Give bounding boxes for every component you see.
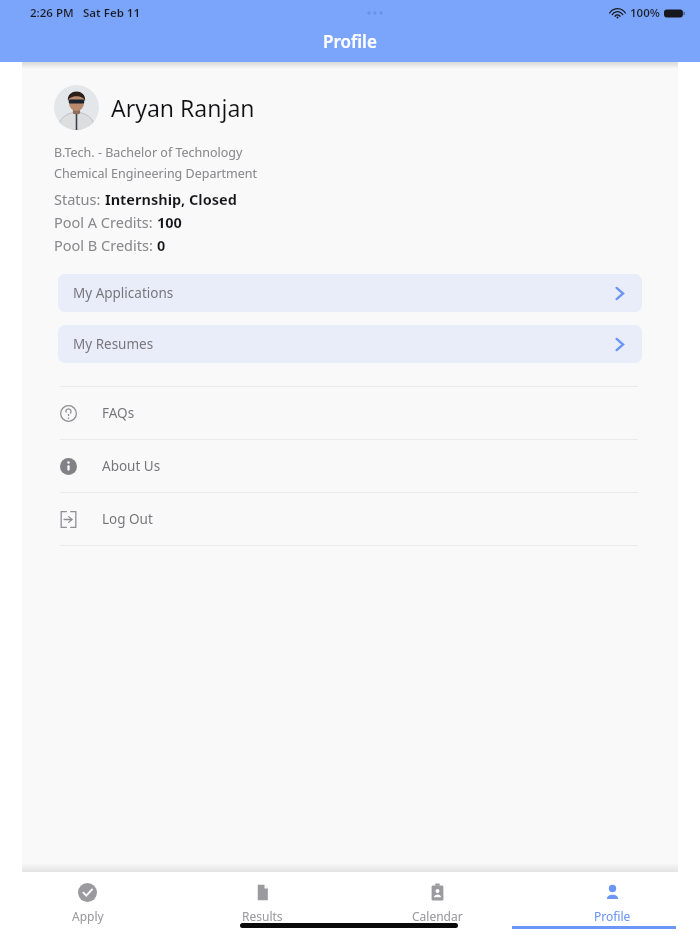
button[interactable]: Results [175, 872, 350, 934]
button[interactable]: Calendar [350, 872, 525, 934]
other: FAQs [60, 405, 77, 422]
staticText: Internship, Closed [105, 189, 237, 209]
button[interactable]: Apply [0, 872, 175, 934]
button[interactable]: My Applications [58, 274, 642, 312]
staticText: My Resumes [73, 335, 154, 353]
button[interactable]: My Resumes [58, 325, 642, 363]
button[interactable]: FAQs [22, 387, 678, 439]
staticText: Pool A Credits: [54, 212, 157, 232]
button[interactable]: About Us [22, 440, 678, 492]
other: Log Out [60, 511, 77, 528]
staticText: Calendar [412, 908, 463, 924]
staticText: Chemical Engineering Department [54, 165, 258, 182]
staticText: About Us [102, 457, 161, 475]
staticText: Apply [72, 908, 104, 924]
staticText: Aryan Ranjan [111, 92, 255, 123]
staticText: B.Tech. - Bachelor of Technology [54, 144, 243, 161]
staticText: My Applications [73, 284, 174, 302]
other: About Us [60, 458, 77, 475]
staticText: 100 [157, 212, 182, 232]
staticText: Log Out [102, 510, 153, 528]
staticText: FAQs [102, 404, 135, 422]
staticText: 2:26 PM [30, 5, 74, 21]
staticText: Sat Feb 11 [83, 5, 140, 21]
staticText: Profile [594, 908, 631, 924]
button[interactable]: Log Out [22, 493, 678, 545]
staticText: Profile [323, 30, 377, 53]
staticText: 0 [157, 235, 166, 255]
staticText: Pool B Credits: [54, 235, 157, 255]
staticText: Results [242, 908, 283, 924]
button[interactable]: Profile [525, 872, 700, 934]
staticText: 100% [630, 5, 660, 21]
staticText: Status: [54, 189, 105, 209]
